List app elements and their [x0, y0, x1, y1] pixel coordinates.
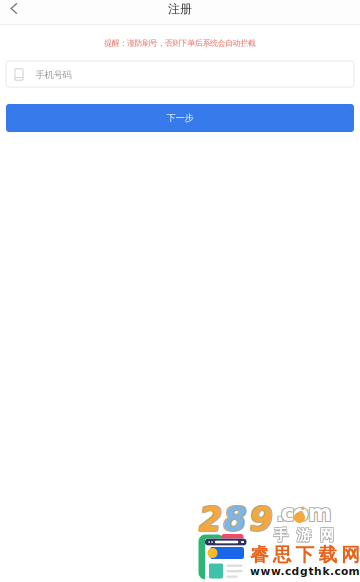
staticText: 2 — [198, 499, 221, 538]
staticText: 下一步 — [166, 112, 193, 124]
staticText: . — [275, 499, 284, 525]
staticText: o — [294, 499, 310, 525]
staticText: 提醒：谨防刷号，否则下单后系统会自动拦截 — [104, 38, 256, 48]
staticText: 9 — [249, 501, 272, 540]
staticText: 手游网 — [273, 527, 334, 545]
staticText: m — [307, 499, 331, 525]
staticText: 手游网 — [273, 525, 334, 544]
staticText: 8 — [223, 501, 246, 540]
staticText: c — [282, 499, 295, 525]
staticText: 8 — [224, 499, 247, 538]
staticText: m — [308, 500, 332, 526]
staticText: o — [293, 500, 309, 526]
staticText: 9 — [249, 500, 272, 539]
staticText: 2 — [199, 500, 222, 539]
button[interactable]: Back — [0, 0, 28, 25]
staticText: 手游网 — [274, 525, 335, 544]
staticText: 2 — [200, 499, 223, 538]
staticText: o — [292, 501, 308, 527]
staticText: . — [277, 501, 286, 527]
staticText: 睿思下载网 — [250, 543, 360, 566]
staticText: c — [282, 501, 295, 527]
staticText: 8 — [223, 499, 246, 538]
staticText: www.cdgthk.com — [250, 565, 359, 577]
staticText: 9 — [250, 501, 273, 540]
staticText: m — [309, 501, 333, 527]
staticText: . — [275, 501, 284, 527]
staticText: 9 — [249, 499, 272, 538]
staticText: m — [309, 499, 333, 525]
staticText: . — [276, 500, 285, 526]
button[interactable]: 下一步 — [0, 104, 360, 132]
staticText: 8 — [224, 501, 247, 540]
staticText: m — [307, 501, 331, 527]
staticText: 手游网 — [274, 527, 335, 545]
staticText: o — [292, 499, 308, 525]
staticText: . — [277, 499, 286, 525]
staticText: 2 — [200, 501, 223, 540]
staticText: 8 — [223, 500, 246, 539]
staticText: c — [280, 501, 293, 527]
staticText: o — [294, 501, 310, 527]
staticText: 2 — [198, 501, 221, 540]
staticText: 手机号码 — [35, 69, 71, 81]
staticText: 注册 — [168, 1, 192, 16]
staticText: c — [281, 500, 294, 526]
staticText: 9 — [250, 499, 273, 538]
staticText: c — [280, 499, 293, 525]
staticText: 手游网 — [273, 526, 334, 544]
